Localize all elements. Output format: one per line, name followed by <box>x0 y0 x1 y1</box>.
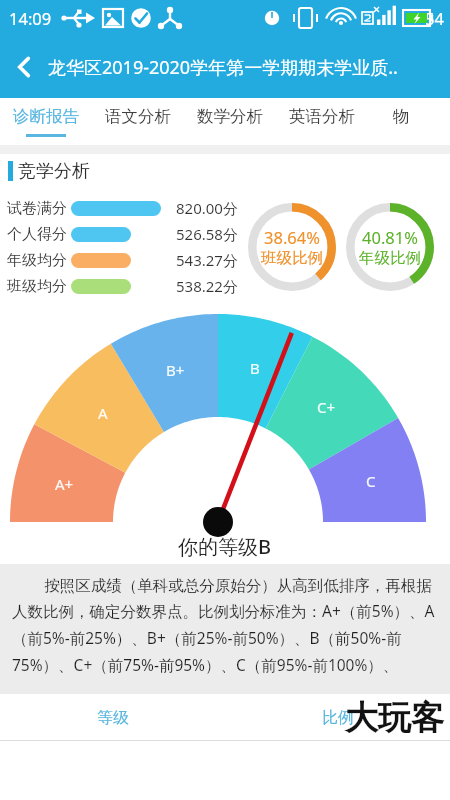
staticText: 年级均分 <box>7 251 67 270</box>
staticText: 班级比例 <box>261 248 323 268</box>
staticText: 14:09 <box>9 7 52 29</box>
staticText: A+ <box>55 474 74 494</box>
staticText: 543.27分 <box>176 250 238 270</box>
staticText: 竞学分析 <box>18 160 90 183</box>
staticText: 你的等级B <box>178 533 272 560</box>
staticText: 54 <box>425 7 444 29</box>
button[interactable]: 诊断报告 <box>13 98 79 145</box>
staticText: A <box>98 403 108 423</box>
button[interactable]: 比例 <box>225 694 450 741</box>
button[interactable]: 等级 <box>0 694 225 741</box>
staticText: 比例 <box>322 708 354 728</box>
button[interactable]: 英语分析 <box>289 98 355 145</box>
staticText: 物 <box>393 106 410 127</box>
button[interactable]: 物 <box>381 98 421 145</box>
staticText: C+ <box>317 397 336 417</box>
staticText: 班级均分 <box>7 277 67 296</box>
staticText: 诊断报告 <box>13 106 79 127</box>
staticText: 538.22分 <box>176 276 238 296</box>
staticText: 年级比例 <box>359 248 421 268</box>
button[interactable]: Back <box>0 36 48 98</box>
staticText: 语文分析 <box>105 106 171 127</box>
staticText: 数学分析 <box>197 106 263 127</box>
staticText: 龙华区2019-2020学年第一学期期末学业质.. <box>48 55 398 80</box>
staticText: 个人得分 <box>7 225 67 244</box>
button[interactable]: 数学分析 <box>197 98 263 145</box>
staticText: 38.64% <box>264 226 320 248</box>
staticText: B <box>250 358 260 378</box>
staticText: 试卷满分 <box>7 199 67 218</box>
staticText: C <box>366 471 376 491</box>
staticText: 按照区成绩（单科或总分原始分）从高到低排序，再根据人数比例，确定分数界点。比例划… <box>12 574 438 676</box>
button[interactable]: 语文分析 <box>105 98 171 145</box>
staticText: 大玩客 <box>345 697 444 739</box>
staticText: 英语分析 <box>289 106 355 127</box>
staticText: 40.81% <box>362 226 418 248</box>
staticText: B+ <box>166 360 185 380</box>
staticText: 820.00分 <box>176 198 238 218</box>
staticText: 526.58分 <box>176 224 238 244</box>
staticText: 等级 <box>97 708 129 728</box>
